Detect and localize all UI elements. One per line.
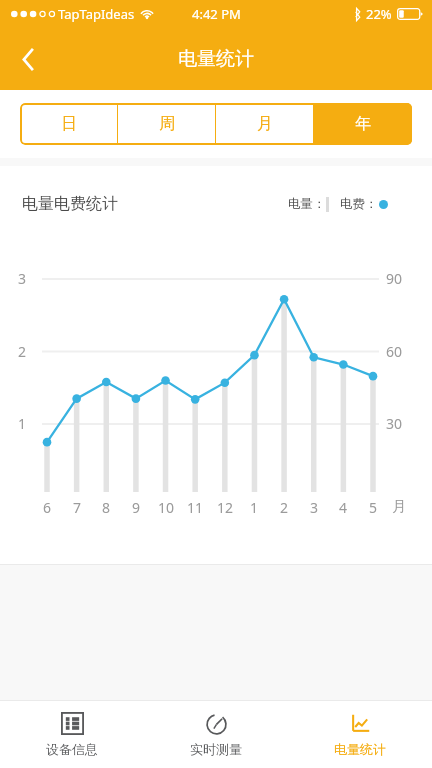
staticText: 90 [386,269,414,288]
button[interactable]: Back [0,28,56,90]
staticText: 11 [183,498,207,517]
staticText: 1 [14,414,30,433]
staticText: 设备信息 [46,741,98,757]
button[interactable]: 周 [118,103,216,145]
staticText: 电量： [288,196,326,212]
staticText: 12 [213,498,237,517]
staticText: 年 [355,114,371,134]
button[interactable]: Power statistics [288,701,432,768]
staticText: 3 [302,498,326,517]
staticText: 1 [242,498,266,517]
button[interactable]: 日 [20,103,118,145]
button[interactable]: 年 [314,103,412,145]
staticText: 10 [154,498,178,517]
staticText: 周 [159,114,175,134]
staticText: 实时测量 [190,741,242,757]
staticText: 2 [272,498,296,517]
staticText: 4:42 PM [192,5,241,23]
staticText: 日 [61,114,77,134]
staticText: 电量统计 [178,47,254,71]
staticText: 电量统计 [334,741,386,757]
staticText: TapTapIdeas [58,5,135,23]
staticText: 4 [331,498,355,517]
staticText: 8 [94,498,118,517]
button[interactable]: 月 [216,103,314,145]
staticText: 2 [14,342,30,361]
staticText: 5 [361,498,385,517]
staticText: 60 [386,342,414,361]
staticText: 9 [124,498,148,517]
staticText: 30 [386,414,414,433]
staticText: 7 [65,498,89,517]
staticText: 月 [257,114,273,134]
staticText: 月 [392,498,406,516]
staticText: 电费： [340,196,378,212]
staticText: 22% [366,5,392,23]
staticText: 3 [14,269,30,288]
button[interactable]: Realtime measure [144,701,288,768]
staticText: 6 [35,498,59,517]
staticText: 电量电费统计 [22,194,118,214]
button[interactable]: Device info [0,701,144,768]
